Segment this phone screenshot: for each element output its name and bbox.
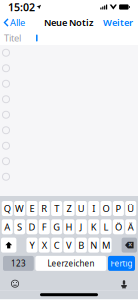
button[interactable]: R (39, 201, 50, 216)
button[interactable]: Leerzeichen (35, 256, 106, 271)
button[interactable]: O (100, 201, 111, 216)
button[interactable]: Alle (0, 14, 29, 31)
staticText: U (78, 202, 85, 215)
staticText: N (90, 239, 97, 251)
staticText: Ü (127, 202, 134, 215)
staticText: S (17, 221, 22, 233)
button[interactable]: Z (63, 201, 74, 216)
button[interactable]: Weiter (97, 14, 138, 31)
button[interactable]: G (51, 219, 62, 234)
button[interactable]: P (113, 201, 124, 216)
staticText: Neue Notiz (44, 16, 94, 29)
button[interactable]: E (26, 201, 37, 216)
staticText: Q (4, 202, 11, 215)
button[interactable]: Fertig (108, 256, 135, 271)
button[interactable]: D (26, 219, 37, 234)
staticText: T (54, 202, 59, 215)
staticText: W (15, 202, 24, 215)
staticText: L (103, 221, 108, 233)
button[interactable]: U (76, 201, 87, 216)
staticText: G (53, 221, 60, 233)
staticText: E (29, 202, 34, 215)
staticText: X (42, 239, 47, 251)
button[interactable]: 123 (3, 256, 34, 271)
staticText: 123 (11, 258, 26, 269)
button[interactable]: F (39, 219, 50, 234)
button[interactable]: Ä (125, 219, 136, 234)
button[interactable]: Shift (1, 238, 16, 253)
staticText: F (42, 221, 47, 233)
staticText: M (102, 239, 110, 251)
staticText: O (102, 202, 109, 215)
button[interactable]: B (76, 238, 87, 253)
button[interactable]: K (88, 219, 99, 234)
button[interactable]: Ö (113, 219, 124, 234)
button[interactable]: L (100, 219, 111, 234)
button[interactable]: M (100, 238, 111, 253)
button[interactable]: Delete (122, 238, 137, 253)
button[interactable]: Dictation (117, 277, 131, 291)
staticText: D (28, 221, 35, 233)
staticText: P (115, 202, 121, 215)
staticText: B (78, 239, 84, 251)
staticText: H (65, 221, 72, 233)
staticText: Ö (115, 221, 122, 233)
button[interactable]: C (51, 238, 62, 253)
staticText: × (128, 239, 133, 250)
staticText: A (4, 221, 10, 233)
staticText: Weiter (103, 16, 133, 29)
button[interactable]: T (51, 201, 62, 216)
button[interactable]: N (88, 238, 99, 253)
staticText: Titel (4, 32, 21, 44)
button[interactable]: A (2, 219, 13, 234)
button[interactable]: X (39, 238, 50, 253)
staticText: Leerzeichen (47, 258, 94, 269)
button[interactable]: Q (2, 201, 13, 216)
staticText: J (80, 221, 83, 233)
staticText: Alle (10, 16, 25, 29)
button[interactable]: Emoji (8, 277, 22, 291)
button[interactable]: S (14, 219, 25, 234)
staticText: K (91, 221, 97, 233)
button[interactable]: Ü (125, 201, 136, 216)
staticText: I (92, 202, 95, 215)
button[interactable]: V (63, 238, 74, 253)
staticText: Ä (128, 221, 134, 233)
button[interactable]: Y (26, 238, 37, 253)
staticText: V (66, 239, 72, 251)
button[interactable]: J (76, 219, 87, 234)
staticText: R (41, 202, 47, 215)
button[interactable]: I (88, 201, 99, 216)
staticText: C (54, 239, 60, 251)
staticText: Y (29, 239, 34, 251)
button[interactable]: H (63, 219, 74, 234)
staticText: 15:02 (8, 0, 35, 14)
staticText: Z (66, 202, 71, 215)
button[interactable]: W (14, 201, 25, 216)
staticText: Fertig (110, 258, 132, 269)
